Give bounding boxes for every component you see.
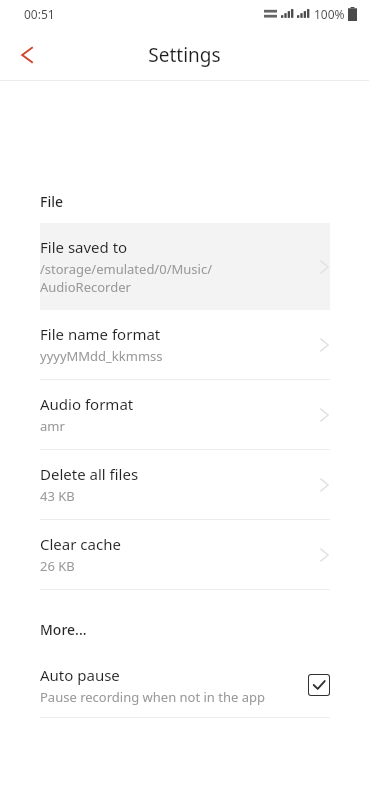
staticText: Auto pause	[40, 665, 120, 685]
staticText: File	[40, 192, 63, 211]
button[interactable]: File name format	[40, 310, 330, 379]
button[interactable]: File saved to	[40, 223, 330, 310]
button[interactable]: Delete all files	[40, 450, 330, 519]
staticText: Settings	[148, 42, 221, 68]
button[interactable]: Back	[6, 33, 50, 77]
staticText: Audio format	[40, 394, 134, 414]
other: Auto pause checkbox	[308, 674, 330, 696]
staticText: yyyyMMdd_kkmmss	[40, 347, 163, 365]
staticText: File saved to	[40, 237, 128, 257]
staticText: File name format	[40, 324, 161, 344]
staticText: Clear cache	[40, 534, 121, 554]
button[interactable]: Audio format	[40, 380, 330, 449]
staticText: 00:51	[24, 6, 55, 22]
staticText: 43 KB	[40, 487, 75, 505]
staticText: More...	[40, 620, 87, 639]
staticText: /storage/emulated/0/Music/ AudioRecorder	[40, 260, 212, 296]
staticText: Pause recording when not in the app	[40, 688, 266, 706]
button[interactable]: Clear cache	[40, 520, 330, 589]
staticText: Delete all files	[40, 464, 139, 484]
staticText: 26 KB	[40, 557, 75, 575]
staticText: amr	[40, 417, 65, 435]
button[interactable]: Auto pause	[40, 653, 330, 717]
staticText: 100%	[314, 6, 345, 22]
